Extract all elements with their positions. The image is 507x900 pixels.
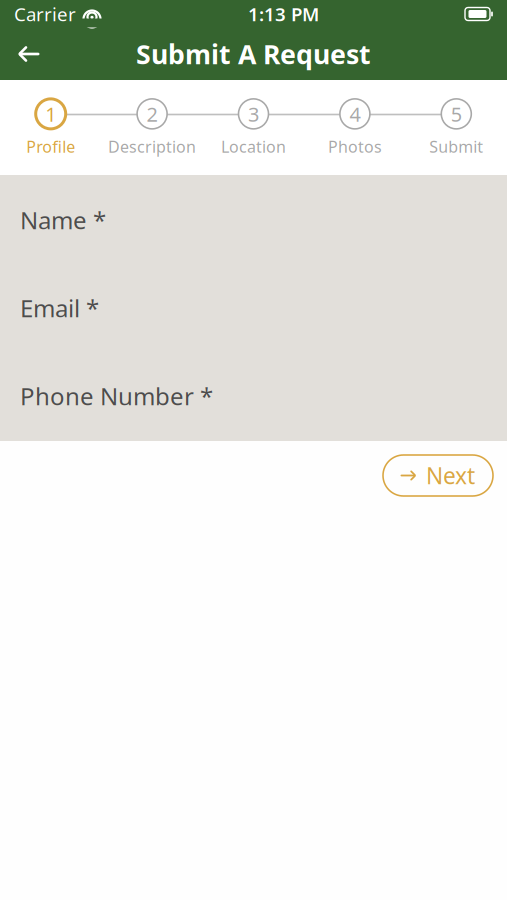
- button[interactable]: Back: [0, 35, 54, 73]
- staticText: Photos: [328, 136, 382, 157]
- staticText: 1:13 PM: [248, 2, 319, 26]
- button[interactable]: 2: [101, 98, 203, 157]
- staticText: 5: [451, 101, 462, 127]
- button[interactable]: Next: [383, 455, 493, 496]
- staticText: Location: [221, 136, 286, 157]
- staticText: Submit: [429, 136, 483, 157]
- button[interactable]: Name *: [0, 176, 507, 264]
- staticText: Phone Number *: [20, 380, 213, 412]
- staticText: Submit A Request: [136, 36, 371, 72]
- staticText: 2: [147, 101, 158, 127]
- staticText: Description: [108, 136, 196, 157]
- staticText: Carrier: [14, 2, 76, 26]
- button[interactable]: 3: [203, 98, 304, 157]
- button[interactable]: Phone Number *: [0, 352, 507, 440]
- staticText: Next: [426, 460, 475, 490]
- staticText: Profile: [26, 136, 75, 157]
- staticText: Email *: [20, 292, 99, 324]
- button[interactable]: 5: [406, 98, 507, 157]
- staticText: 4: [349, 101, 360, 127]
- staticText: Name *: [20, 204, 106, 236]
- button[interactable]: 4: [304, 98, 406, 157]
- staticText: 3: [248, 101, 259, 127]
- staticText: 1: [45, 101, 56, 127]
- button[interactable]: Email *: [0, 264, 507, 352]
- button[interactable]: 1: [0, 98, 101, 157]
